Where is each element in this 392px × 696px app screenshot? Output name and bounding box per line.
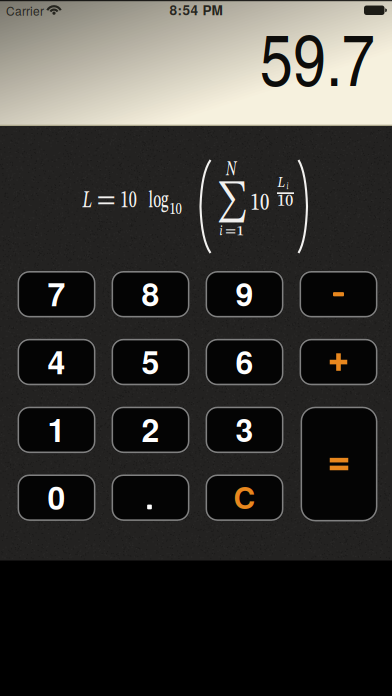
staticText: 59.7 [260, 8, 375, 106]
staticText: 10 [277, 193, 293, 209]
staticText: =1 [225, 224, 243, 239]
staticText: ∑ [217, 182, 254, 222]
staticText: 5 [141, 338, 159, 384]
staticText: 7 [47, 270, 65, 316]
button[interactable]: 0 [17, 474, 95, 521]
button[interactable]: 6 [205, 339, 283, 385]
staticText: log [148, 188, 182, 213]
staticText: N [226, 160, 241, 180]
button[interactable]: 8 [111, 271, 189, 317]
staticText: Carrier [6, 2, 44, 19]
staticText: 8:54 PM [169, 0, 222, 19]
staticText: i [219, 224, 223, 239]
button[interactable] [300, 407, 377, 521]
button[interactable]: 4 [17, 339, 95, 385]
staticText: 3 [235, 406, 253, 452]
staticText: 8 [141, 270, 159, 316]
staticText: 2 [141, 406, 159, 452]
staticText: 0 [47, 474, 65, 519]
staticText: 1 [47, 406, 65, 452]
button[interactable]: 9 [205, 271, 283, 317]
button[interactable]: 1 [17, 407, 95, 453]
staticText: L [277, 175, 286, 191]
button[interactable]: 5 [111, 339, 189, 385]
staticText: 10 [169, 201, 185, 218]
button[interactable]: 7 [17, 271, 95, 317]
button[interactable] [299, 339, 377, 385]
button[interactable] [111, 474, 189, 521]
staticText: = [96, 188, 114, 213]
staticText: 10 [120, 188, 146, 213]
button[interactable]: 2 [111, 407, 189, 453]
staticText: 9 [235, 270, 253, 316]
staticText: 10 [250, 190, 276, 216]
button[interactable]: C [205, 474, 283, 521]
staticText: 6 [235, 338, 253, 384]
button[interactable]: 3 [205, 407, 283, 453]
staticText: C [233, 475, 255, 518]
button[interactable] [299, 271, 377, 317]
staticText: 4 [47, 338, 65, 384]
staticText: i [286, 181, 289, 192]
staticText: L [82, 188, 97, 213]
